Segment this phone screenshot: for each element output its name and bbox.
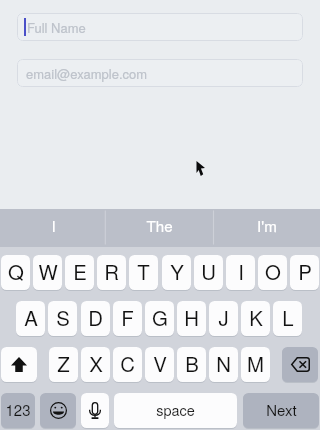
button[interactable]: Y — [162, 255, 191, 290]
button[interactable]: Voice input — [81, 393, 109, 428]
staticText: J — [218, 303, 229, 332]
button[interactable]: G — [145, 301, 174, 336]
button[interactable]: O — [258, 255, 287, 290]
staticText: space — [156, 399, 195, 420]
staticText: B — [185, 349, 199, 378]
staticText: H — [184, 303, 199, 332]
staticText: L — [282, 303, 294, 332]
staticText: V — [153, 349, 167, 378]
staticText: F — [121, 303, 134, 332]
button[interactable]: Q — [1, 255, 30, 290]
staticText: N — [216, 349, 231, 378]
staticText: X — [89, 349, 103, 378]
button[interactable]: 123 — [1, 393, 35, 428]
button[interactable]: L — [273, 301, 302, 336]
staticText: R — [104, 257, 119, 286]
staticText: email@example.com — [26, 64, 148, 83]
button[interactable]: E — [65, 255, 94, 290]
button[interactable]: F — [113, 301, 142, 336]
button[interactable]: Z — [49, 347, 78, 382]
staticText: D — [88, 303, 103, 332]
button[interactable]: I'm — [213, 209, 320, 247]
button[interactable]: space — [114, 393, 237, 428]
button[interactable]: B — [177, 347, 206, 382]
staticText: The — [146, 215, 173, 237]
staticText: W — [38, 257, 58, 286]
button[interactable]: W — [33, 255, 62, 290]
button[interactable]: J — [209, 301, 238, 336]
staticText: I — [51, 215, 56, 237]
staticText: 123 — [5, 399, 31, 420]
button[interactable]: C — [113, 347, 142, 382]
button[interactable]: email@example.com — [17, 59, 303, 87]
button[interactable]: T — [129, 255, 158, 290]
button[interactable]: Shift — [1, 347, 37, 382]
button[interactable]: The — [106, 209, 213, 247]
button[interactable]: K — [241, 301, 270, 336]
button[interactable]: S — [48, 301, 77, 336]
staticText: A — [24, 303, 38, 332]
staticText: M — [247, 349, 264, 378]
button[interactable]: Full Name — [17, 13, 303, 41]
button[interactable]: Backspace — [282, 347, 318, 382]
staticText: I'm — [257, 215, 277, 237]
staticText: Next — [266, 399, 297, 420]
button[interactable]: Next — [243, 393, 319, 428]
button[interactable]: A — [16, 301, 45, 336]
staticText: Full Name — [27, 18, 86, 37]
button[interactable]: M — [241, 347, 270, 382]
button[interactable]: U — [194, 255, 223, 290]
button[interactable]: Emoji keyboard — [40, 393, 76, 428]
button[interactable]: V — [145, 347, 174, 382]
button[interactable]: D — [81, 301, 110, 336]
button[interactable]: N — [209, 347, 238, 382]
staticText: C — [120, 349, 135, 378]
staticText: Q — [8, 257, 24, 286]
button[interactable]: X — [81, 347, 110, 382]
button[interactable]: R — [97, 255, 126, 290]
staticText: T — [137, 257, 150, 286]
staticText: E — [73, 257, 87, 286]
button[interactable]: P — [290, 255, 319, 290]
staticText: P — [298, 257, 312, 286]
staticText: Y — [170, 257, 184, 286]
staticText: G — [152, 303, 168, 332]
staticText: Z — [57, 349, 70, 378]
staticText: K — [249, 303, 263, 332]
button[interactable]: H — [177, 301, 206, 336]
staticText: S — [56, 303, 70, 332]
button[interactable]: I — [0, 209, 106, 247]
staticText: I — [238, 257, 244, 286]
staticText: U — [201, 257, 216, 286]
button[interactable]: I — [226, 255, 255, 290]
staticText: O — [265, 257, 281, 286]
